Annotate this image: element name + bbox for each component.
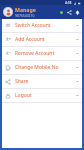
button[interactable]: Switch Account	[2, 19, 82, 32]
button[interactable]: Notifications	[73, 8, 81, 16]
staticText: Logout	[15, 92, 76, 99]
button[interactable]: Share	[65, 8, 73, 16]
button[interactable]: Share	[2, 75, 82, 88]
button[interactable]: Remove Account	[2, 47, 82, 60]
button[interactable]: Logout	[2, 89, 82, 102]
staticText: Share	[15, 78, 76, 85]
button[interactable]: Account avatar	[3, 7, 13, 17]
staticText: Switch Account	[15, 22, 76, 29]
staticText: Manage Account	[15, 6, 58, 13]
staticText: Remove Account	[15, 50, 76, 57]
button[interactable]: Online status	[58, 9, 65, 16]
staticText: Change Mobile No	[15, 64, 76, 71]
staticText: 9876543210	[15, 13, 35, 18]
staticText: Add Account	[15, 36, 76, 43]
staticText: 4:18	[65, 1, 72, 5]
button[interactable]: Add Account	[2, 33, 82, 46]
button[interactable]: Change Mobile No	[2, 61, 82, 74]
